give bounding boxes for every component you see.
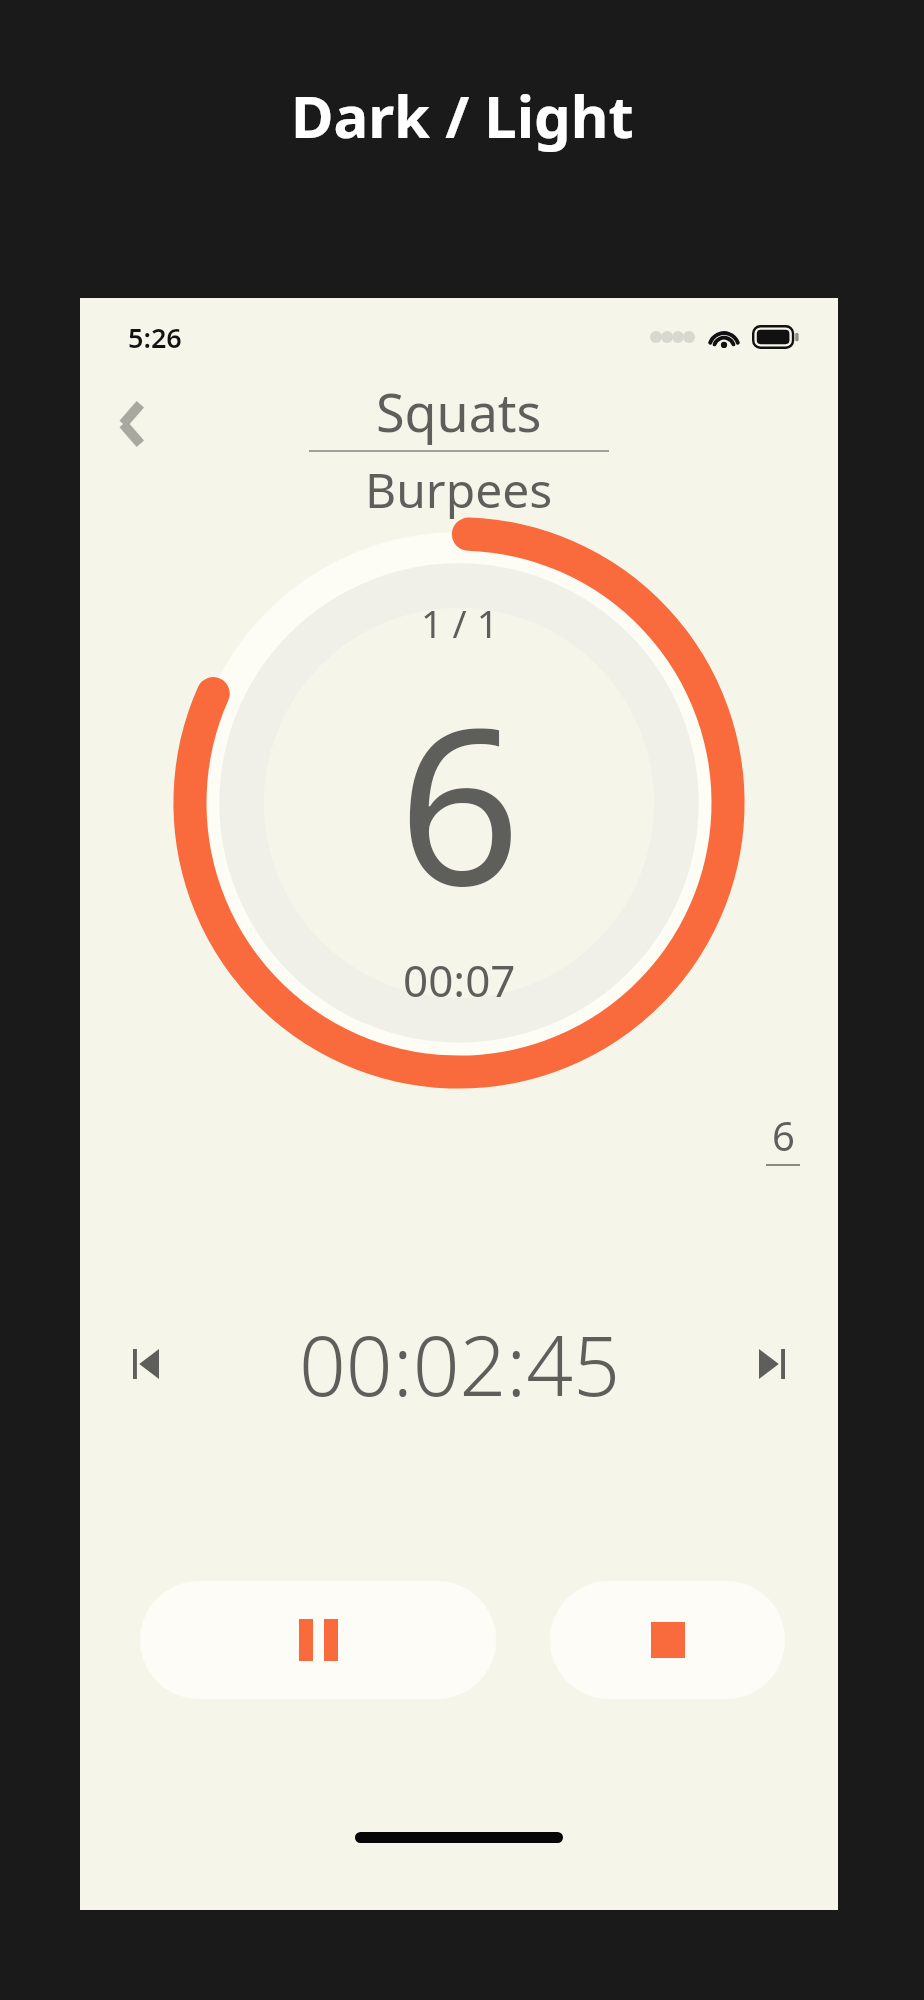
staticText: Squats <box>376 376 542 447</box>
button[interactable]: Pause <box>140 1581 496 1699</box>
staticText: 00:07 <box>403 950 516 1010</box>
button[interactable]: Back <box>92 384 172 464</box>
button[interactable]: Next <box>736 1328 808 1400</box>
staticText: 5:26 <box>128 319 182 356</box>
staticText: Dark / Light <box>291 76 634 155</box>
staticText: 6 <box>398 655 521 948</box>
staticText: 1 / 1 <box>421 597 499 649</box>
staticText: Burpees <box>365 457 553 522</box>
button[interactable]: Previous <box>110 1328 182 1400</box>
staticText: 00:02:45 <box>299 1308 620 1420</box>
button[interactable]: Stop <box>550 1581 785 1699</box>
staticText: 6 <box>772 1108 795 1162</box>
